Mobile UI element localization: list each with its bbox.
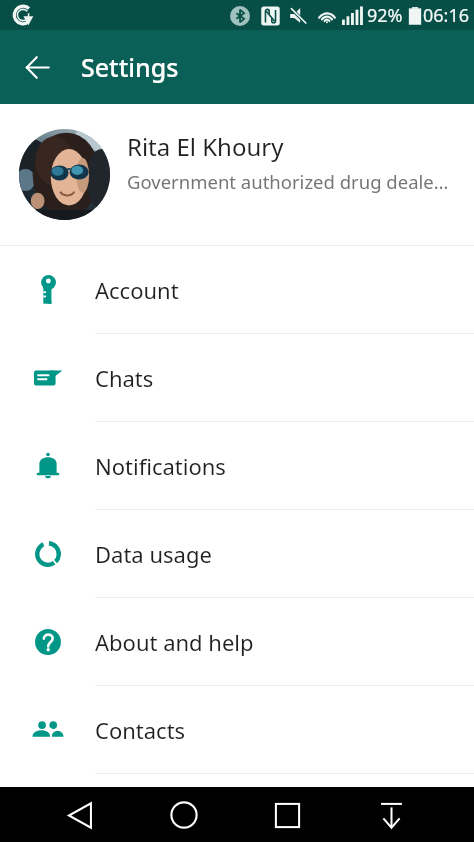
staticText: About and help [95, 627, 254, 657]
button[interactable]: Notifications [0, 422, 474, 509]
button[interactable]: Contacts [0, 686, 474, 773]
staticText: Account [95, 275, 179, 305]
button[interactable]: Recents [261, 789, 313, 841]
button[interactable]: Navigate back [54, 789, 106, 841]
staticText: 92% [367, 3, 403, 28]
button[interactable]: Back [11, 41, 63, 93]
staticText: Government authorized drug deale… [127, 169, 449, 194]
staticText: Data usage [95, 539, 212, 569]
staticText: Settings [81, 50, 179, 84]
staticText: Notifications [95, 451, 226, 481]
button[interactable]: Chats [0, 334, 474, 421]
button[interactable]: Account [0, 246, 474, 333]
button[interactable]: Data usage [0, 510, 474, 597]
staticText: 06:16 [423, 3, 470, 28]
button[interactable]: Hide keyboard [365, 789, 417, 841]
staticText: Rita El Khoury [127, 130, 284, 163]
staticText: Chats [95, 363, 154, 393]
staticText: Contacts [95, 715, 186, 745]
button[interactable]: Rita El Khoury [0, 104, 474, 245]
button[interactable]: Home [158, 789, 210, 841]
button[interactable]: About and help [0, 598, 474, 685]
